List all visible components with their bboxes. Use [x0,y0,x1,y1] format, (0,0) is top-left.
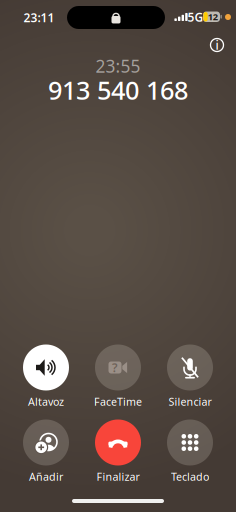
staticText: 23:11 [23,9,54,25]
button[interactable]: Añadir [10,419,82,483]
staticText: Altavoz [28,394,64,409]
staticText: 5G [187,9,203,25]
staticText: Añadir [29,469,63,484]
staticText: i [215,37,218,53]
staticText: 23:55 [95,54,140,77]
staticText: Finalizar [96,469,139,484]
staticText: Teclado [171,469,209,484]
button[interactable]: Teclado [154,419,226,483]
button[interactable]: Altavoz [10,344,82,408]
button[interactable]: ? [82,344,154,408]
staticText: 913 540 168 [48,73,188,107]
button[interactable]: Call info [203,34,231,56]
button[interactable]: Silenciar [154,344,226,408]
button[interactable]: Finalizar [82,419,154,483]
staticText: ? [112,359,118,375]
staticText: Silenciar [168,394,211,409]
staticText: 12 [208,11,218,23]
staticText: FaceTime [94,394,142,409]
